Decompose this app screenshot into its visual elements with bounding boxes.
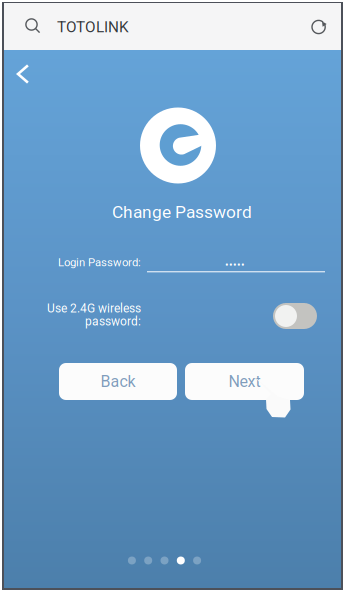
staticText: Back	[100, 372, 135, 391]
button[interactable]: Refresh	[302, 10, 336, 44]
staticText: Use 2.4G wireless	[47, 301, 141, 316]
button[interactable]: Next	[185, 363, 304, 400]
button[interactable]: Back	[5, 56, 41, 92]
staticText: password:	[85, 314, 141, 329]
staticText: Login Password:	[58, 256, 141, 269]
button[interactable]: Use 2.4G wireless password	[273, 303, 317, 329]
staticText: Next	[228, 372, 260, 391]
staticText: •••••	[225, 259, 245, 271]
staticText: Change Password	[112, 202, 252, 222]
button[interactable]: Back	[59, 363, 177, 400]
staticText: TOTOLINK	[57, 18, 129, 36]
